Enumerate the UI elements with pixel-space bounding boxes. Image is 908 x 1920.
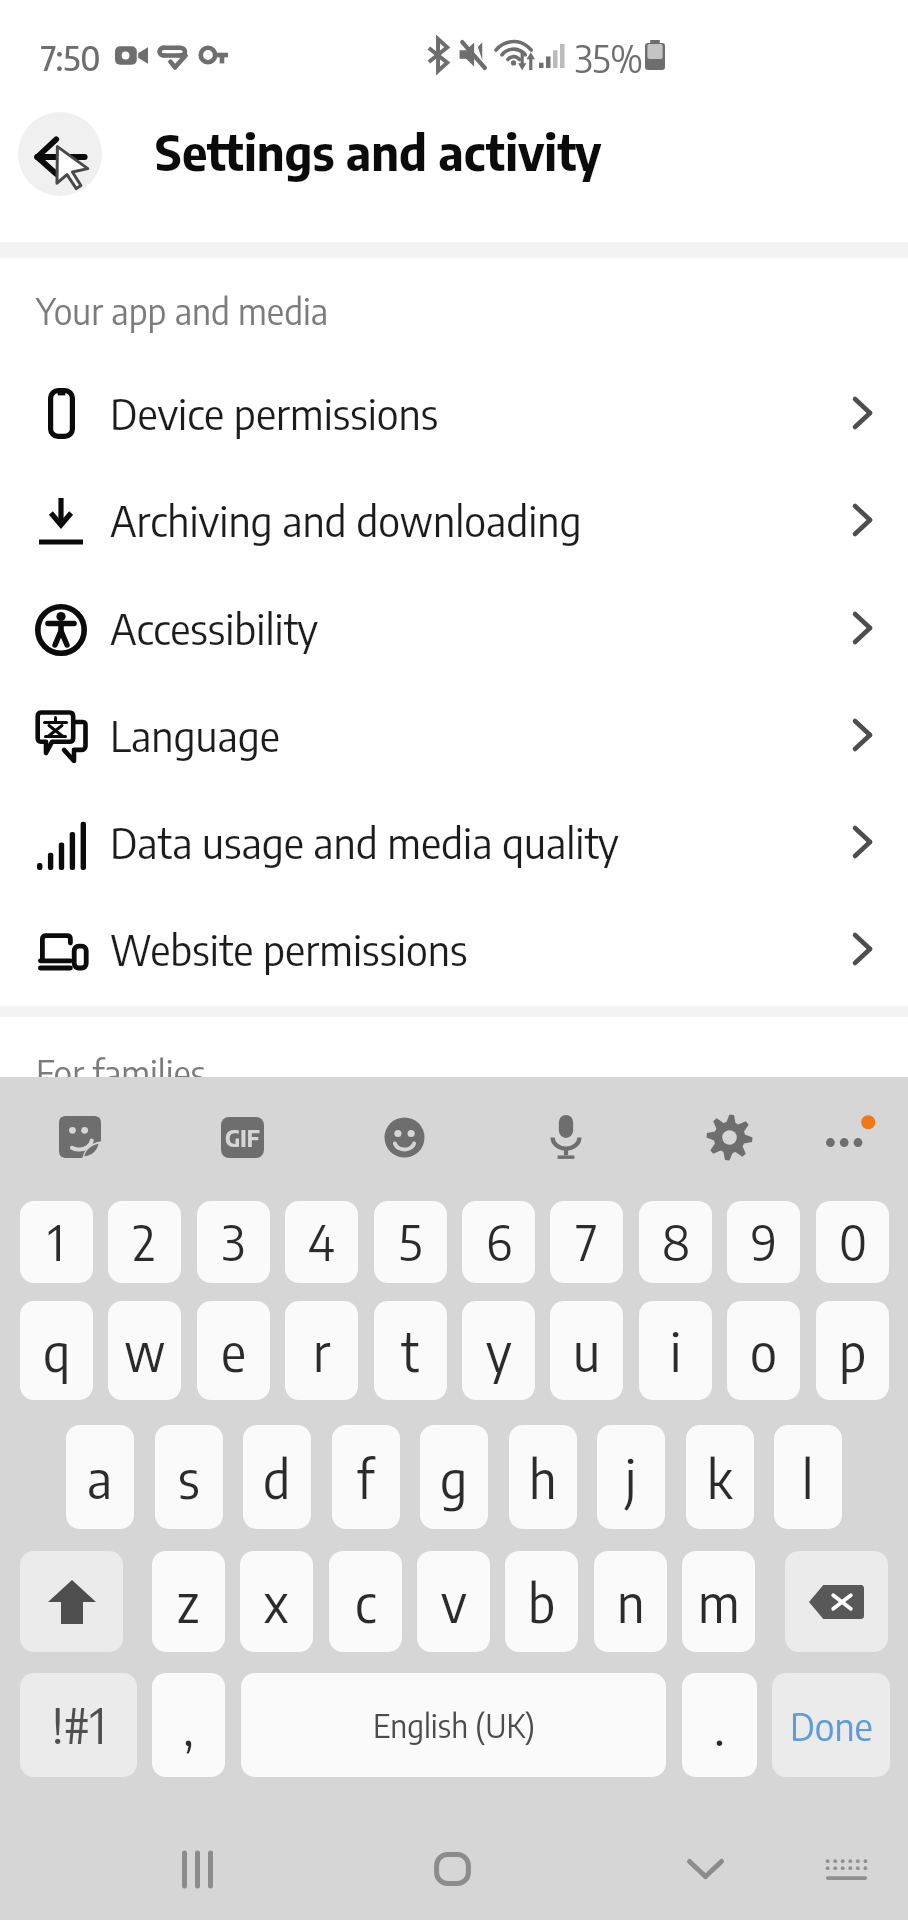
button[interactable]: Done bbox=[772, 1673, 890, 1777]
button[interactable]: i bbox=[639, 1301, 712, 1400]
button[interactable]: u bbox=[550, 1301, 623, 1400]
staticText: c bbox=[355, 1569, 377, 1634]
button[interactable]: . bbox=[682, 1673, 757, 1777]
button[interactable]: e bbox=[197, 1301, 270, 1400]
button[interactable]: w bbox=[108, 1301, 181, 1400]
staticText: u bbox=[573, 1318, 601, 1383]
staticText: h bbox=[529, 1445, 557, 1510]
button[interactable]: x bbox=[240, 1551, 313, 1652]
button[interactable]: 7 bbox=[550, 1201, 623, 1283]
staticText: 7:50 bbox=[41, 36, 101, 79]
button[interactable]: Archiving and downloading bbox=[0, 466, 908, 573]
button[interactable]: t bbox=[374, 1301, 447, 1400]
button[interactable]: 9 bbox=[727, 1201, 800, 1283]
button[interactable]: Stickers bbox=[46, 1107, 114, 1167]
button[interactable]: Device permissions bbox=[0, 359, 908, 466]
button[interactable]: a bbox=[66, 1425, 134, 1529]
button[interactable]: v bbox=[417, 1551, 490, 1652]
button[interactable]: 2 bbox=[108, 1201, 181, 1283]
staticText: 2 bbox=[133, 1212, 156, 1272]
button[interactable]: More options bbox=[812, 1107, 880, 1167]
button[interactable]: s bbox=[155, 1425, 223, 1529]
button[interactable]: 5 bbox=[374, 1201, 447, 1283]
staticText: Done bbox=[790, 1702, 873, 1749]
button[interactable]: Backspace bbox=[785, 1551, 888, 1652]
staticText: v bbox=[441, 1569, 467, 1634]
staticText: b bbox=[528, 1569, 556, 1634]
button[interactable]: !#1 bbox=[20, 1673, 137, 1777]
button[interactable]: p bbox=[816, 1301, 889, 1400]
staticText: z bbox=[177, 1569, 200, 1634]
button[interactable]: Website permissions bbox=[0, 895, 908, 1002]
button[interactable]: Hide keyboard bbox=[662, 1826, 748, 1912]
staticText: k bbox=[707, 1445, 733, 1510]
button[interactable]: Recents bbox=[154, 1826, 240, 1912]
staticText: 7 bbox=[576, 1212, 598, 1272]
button[interactable]: Data usage and media quality bbox=[0, 788, 908, 895]
button[interactable]: Accessibility bbox=[0, 574, 908, 681]
button[interactable]: k bbox=[686, 1425, 754, 1529]
button[interactable]: j bbox=[597, 1425, 665, 1529]
button[interactable]: 1 bbox=[20, 1201, 93, 1283]
staticText: i bbox=[670, 1318, 682, 1383]
staticText: j bbox=[625, 1445, 637, 1510]
staticText: Accessibility bbox=[110, 602, 319, 654]
staticText: y bbox=[486, 1318, 512, 1383]
button[interactable]: Keyboard settings bbox=[695, 1107, 763, 1167]
staticText: English (UK) bbox=[373, 1705, 535, 1745]
button[interactable]: h bbox=[509, 1425, 577, 1529]
button[interactable]: English (UK) bbox=[241, 1673, 666, 1777]
staticText: 1 bbox=[48, 1212, 65, 1272]
button[interactable]: m bbox=[682, 1551, 755, 1652]
staticText: t bbox=[401, 1318, 420, 1383]
button[interactable]: q bbox=[20, 1301, 93, 1400]
button[interactable]: GIF bbox=[208, 1107, 276, 1167]
button[interactable]: g bbox=[420, 1425, 488, 1529]
staticText: Website permissions bbox=[110, 923, 468, 975]
button[interactable]: Emoji bbox=[370, 1107, 438, 1167]
button[interactable]: y bbox=[462, 1301, 535, 1400]
button[interactable]: 3 bbox=[197, 1201, 270, 1283]
button[interactable]: 0 bbox=[816, 1201, 889, 1283]
button[interactable]: f bbox=[332, 1425, 400, 1529]
button[interactable]: b bbox=[505, 1551, 578, 1652]
button[interactable]: , bbox=[152, 1673, 225, 1777]
staticText: m bbox=[698, 1569, 740, 1634]
staticText: r bbox=[313, 1318, 331, 1383]
button[interactable]: z bbox=[152, 1551, 225, 1652]
staticText: , bbox=[183, 1694, 194, 1757]
staticText: e bbox=[221, 1318, 246, 1383]
staticText: For families bbox=[36, 1050, 206, 1095]
staticText: g bbox=[440, 1445, 468, 1510]
staticText: Language bbox=[110, 709, 280, 761]
staticText: 5 bbox=[399, 1212, 423, 1272]
button[interactable]: d bbox=[243, 1425, 311, 1529]
staticText: w bbox=[124, 1318, 166, 1383]
button[interactable]: Voice input bbox=[532, 1107, 600, 1167]
button[interactable]: 6 bbox=[462, 1201, 535, 1283]
button[interactable]: Home bbox=[409, 1826, 495, 1912]
button[interactable]: Back bbox=[18, 112, 102, 196]
button[interactable]: l bbox=[774, 1425, 842, 1529]
button[interactable]: r bbox=[285, 1301, 358, 1400]
staticText: f bbox=[357, 1445, 375, 1510]
button[interactable]: 4 bbox=[285, 1201, 358, 1283]
staticText: o bbox=[750, 1318, 777, 1383]
button[interactable]: Language bbox=[0, 681, 908, 788]
button[interactable]: o bbox=[727, 1301, 800, 1400]
button[interactable]: 8 bbox=[639, 1201, 712, 1283]
button[interactable]: Change keyboard bbox=[803, 1826, 889, 1912]
staticText: 9 bbox=[751, 1212, 777, 1272]
staticText: l bbox=[802, 1445, 814, 1510]
staticText: q bbox=[43, 1318, 71, 1383]
staticText: GIF bbox=[225, 1123, 260, 1152]
staticText: Settings and activity bbox=[155, 121, 602, 182]
button[interactable]: Shift bbox=[20, 1551, 123, 1652]
staticText: !#1 bbox=[52, 1695, 106, 1755]
staticText: p bbox=[839, 1318, 867, 1383]
staticText: 4 bbox=[308, 1212, 335, 1272]
staticText: x bbox=[264, 1569, 289, 1634]
button[interactable]: n bbox=[594, 1551, 667, 1652]
staticText: d bbox=[263, 1445, 291, 1510]
button[interactable]: c bbox=[329, 1551, 402, 1652]
